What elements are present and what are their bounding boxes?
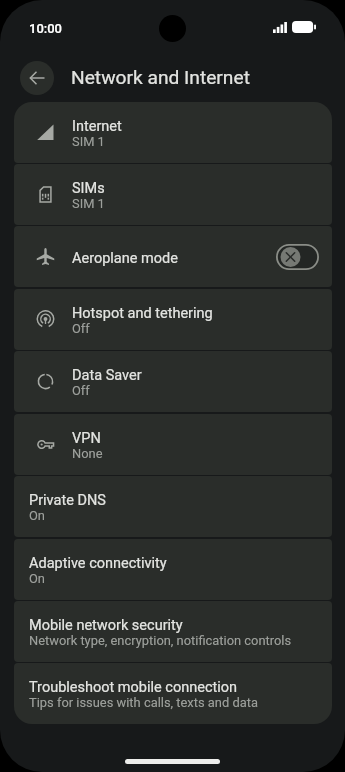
staticText: Troubleshoot mobile connection [29, 679, 238, 696]
staticText: Network type, encryption, notification c… [29, 633, 292, 648]
staticText: SIM 1 [72, 196, 105, 211]
staticText: Internet [72, 118, 122, 135]
staticText: Hotspot and tethering [72, 305, 213, 322]
button[interactable]: VPN [14, 414, 332, 475]
button[interactable]: Data Saver [14, 351, 332, 412]
staticText: On [29, 508, 45, 523]
button[interactable]: Aeroplane mode [14, 226, 332, 287]
staticText: Off [72, 383, 90, 398]
button[interactable]: Back [20, 61, 54, 95]
staticText: SIMs [72, 180, 105, 197]
button[interactable]: Private DNS [14, 476, 332, 537]
button[interactable]: Troubleshoot mobile connection [14, 663, 332, 724]
button[interactable]: SIMs [14, 164, 332, 225]
button[interactable]: Aeroplane mode, off [276, 244, 319, 270]
staticText: None [72, 446, 103, 461]
staticText: Mobile network security [29, 617, 183, 634]
button[interactable]: Mobile network security [14, 601, 332, 662]
staticText: Data Saver [72, 367, 142, 384]
staticText: Network and Internet [71, 66, 250, 89]
staticText: 10:00 [29, 21, 63, 36]
staticText: Tips for issues with calls, texts and da… [29, 695, 258, 710]
button[interactable]: Adaptive connectivity [14, 539, 332, 600]
staticText: VPN [72, 430, 101, 447]
button[interactable]: Hotspot and tethering [14, 289, 332, 350]
staticText: Off [72, 321, 90, 336]
staticText: On [29, 571, 45, 586]
staticText: Adaptive connectivity [29, 555, 167, 572]
button[interactable]: Internet [14, 102, 332, 163]
staticText: Private DNS [29, 492, 106, 509]
staticText: SIM 1 [72, 134, 105, 149]
staticText: Aeroplane mode [72, 250, 178, 267]
